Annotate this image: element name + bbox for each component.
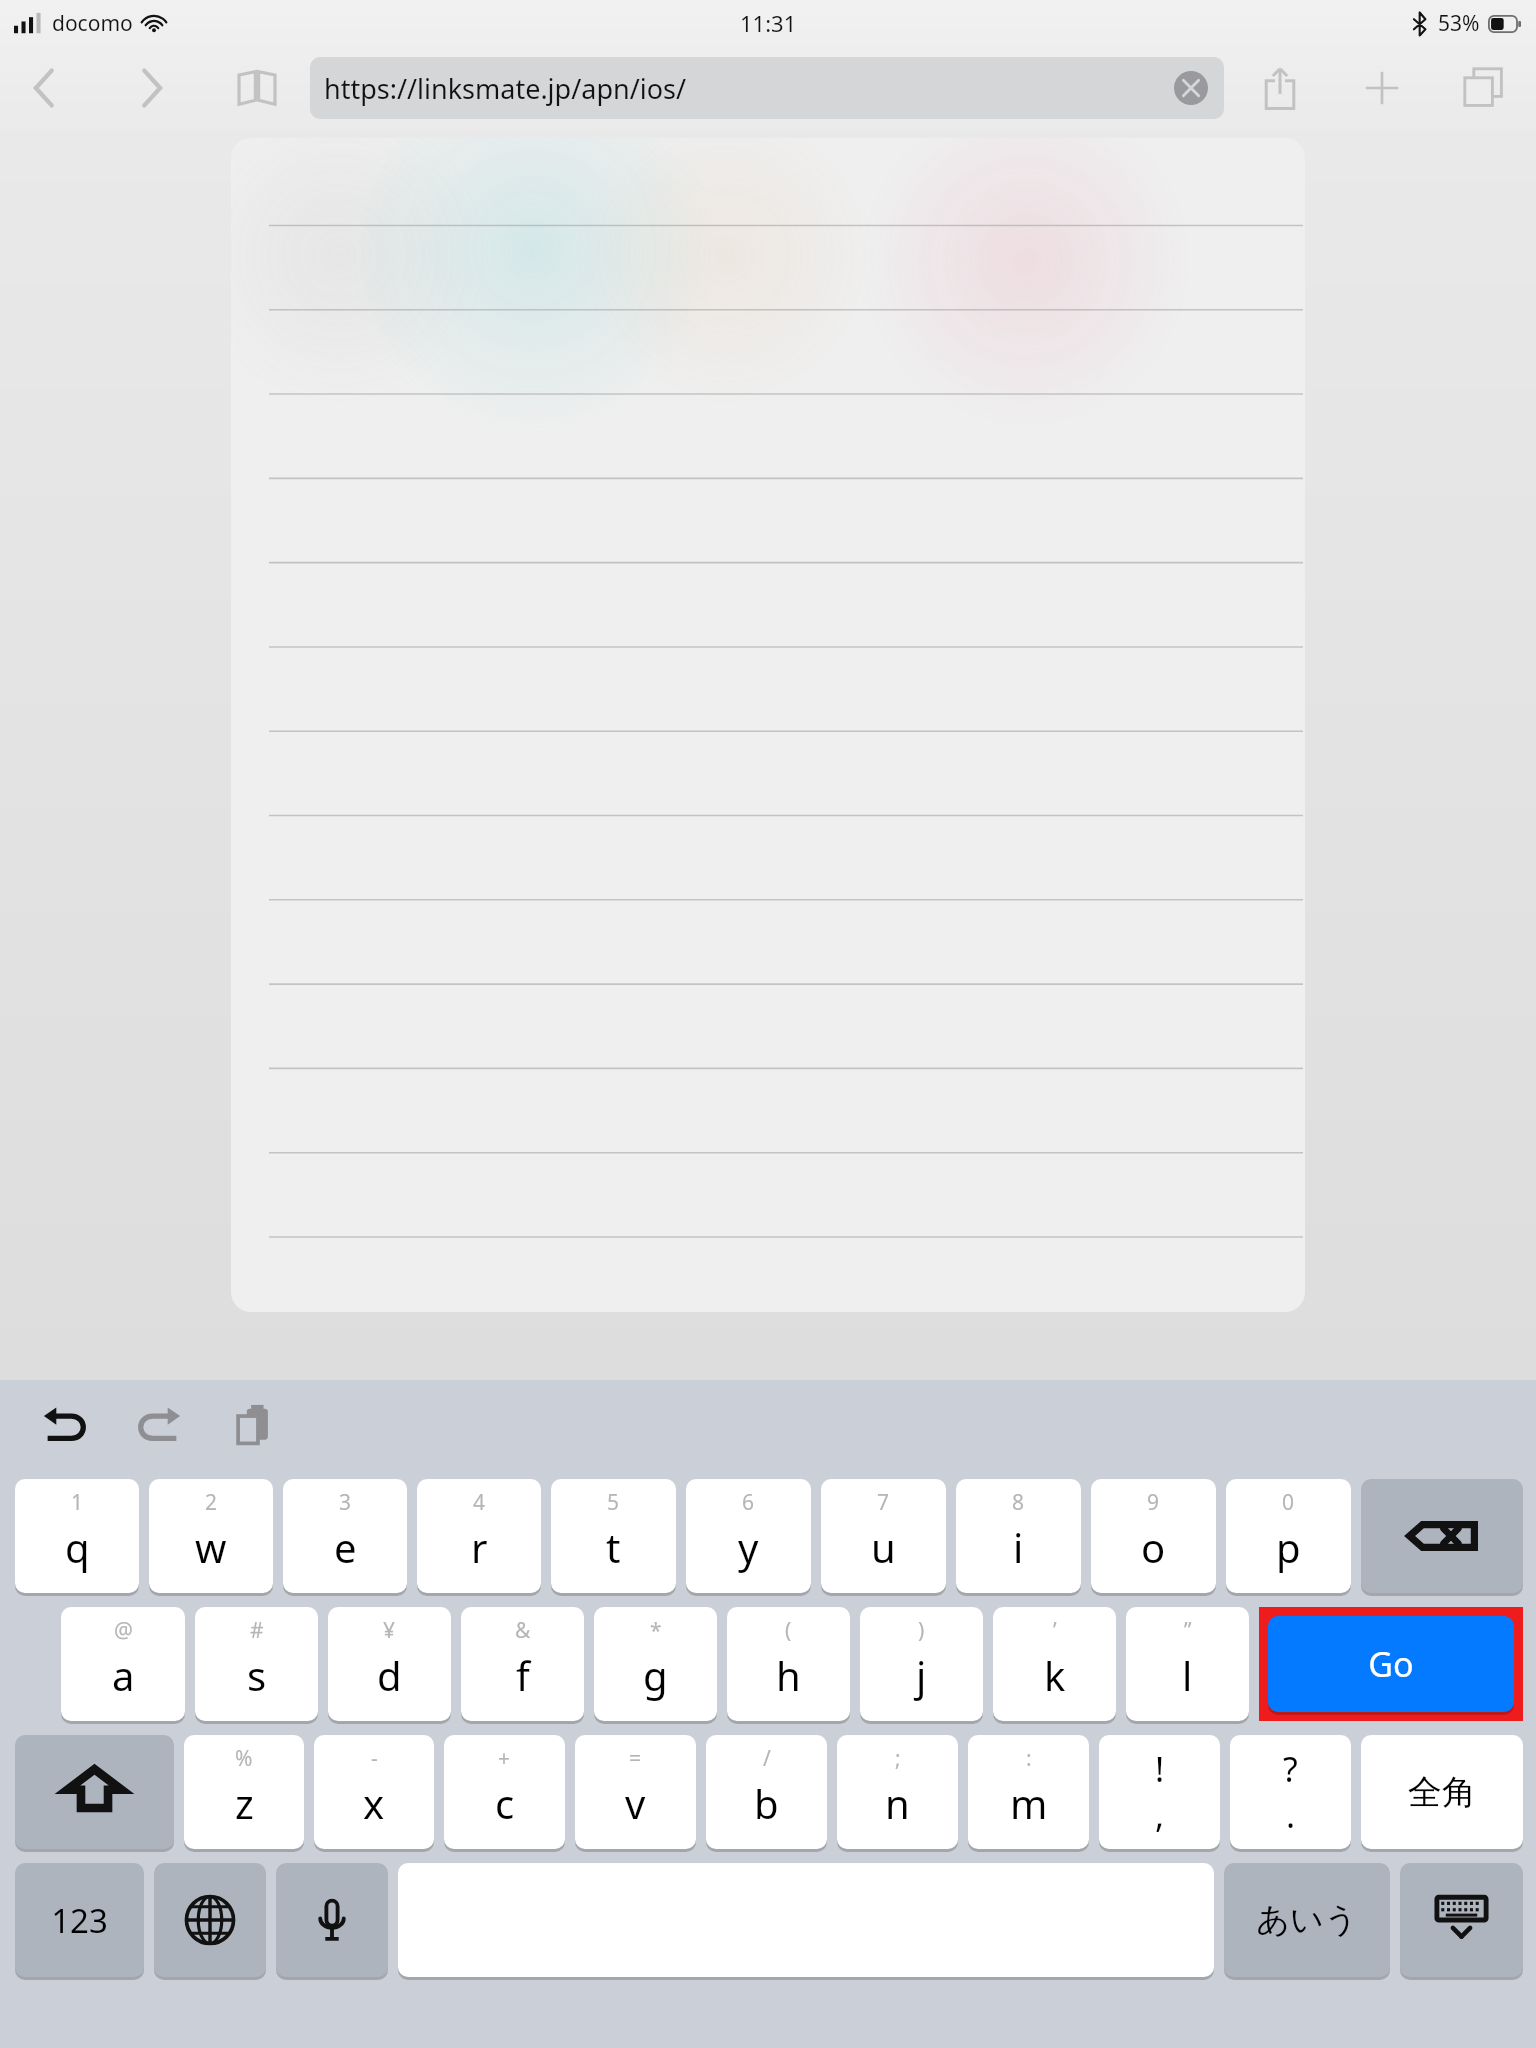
button[interactable]: Back xyxy=(16,59,74,117)
button[interactable]: - xyxy=(314,1735,434,1849)
staticText: 9 xyxy=(1147,1488,1160,1517)
button[interactable]: = xyxy=(575,1735,696,1849)
button[interactable]: Forward xyxy=(122,59,180,117)
button[interactable]: https://linksmate.jp/apn/ios/ xyxy=(310,57,1224,119)
staticText: w xyxy=(195,1520,227,1574)
button[interactable]: Backspace xyxy=(1361,1479,1523,1593)
button[interactable]: 1 xyxy=(15,1479,139,1593)
button[interactable]: ’ xyxy=(993,1607,1116,1721)
button[interactable]: Bookmarks xyxy=(228,59,286,117)
staticText: ” xyxy=(1184,1616,1192,1645)
staticText: 4 xyxy=(473,1488,486,1517)
staticText: o xyxy=(1141,1520,1166,1574)
button[interactable]: ¥ xyxy=(328,1607,451,1721)
staticText: b xyxy=(754,1776,779,1830)
button[interactable]: + xyxy=(444,1735,565,1849)
staticText: n xyxy=(885,1776,910,1830)
staticText: - xyxy=(371,1744,378,1773)
button[interactable]: 全角 xyxy=(1361,1735,1523,1849)
button[interactable]: ) xyxy=(860,1607,983,1721)
button[interactable]: Hide keyboard xyxy=(1400,1863,1523,1977)
button[interactable]: & xyxy=(461,1607,584,1721)
staticText: 1 xyxy=(71,1488,84,1517)
staticText: y xyxy=(738,1520,759,1574)
button[interactable]: Redo xyxy=(128,1395,190,1457)
staticText: v xyxy=(625,1776,646,1830)
staticText: ; xyxy=(895,1744,901,1773)
staticText: 2 xyxy=(205,1488,218,1517)
staticText: f xyxy=(516,1648,530,1702)
staticText: 123 xyxy=(51,1898,108,1943)
button[interactable]: Show tabs xyxy=(1454,58,1514,118)
staticText: 7 xyxy=(877,1488,890,1517)
staticText: = xyxy=(629,1744,642,1773)
staticText: / xyxy=(763,1744,771,1773)
staticText: & xyxy=(515,1616,531,1645)
staticText: 5 xyxy=(607,1488,620,1517)
staticText: h xyxy=(776,1648,801,1702)
button[interactable]: 5 xyxy=(551,1479,676,1593)
button[interactable]: ” xyxy=(1126,1607,1249,1721)
staticText: @ xyxy=(114,1616,133,1645)
button[interactable]: / xyxy=(706,1735,827,1849)
staticText: ’ xyxy=(1053,1616,1057,1645)
button[interactable]: Dictation xyxy=(276,1863,388,1977)
staticText: + xyxy=(498,1744,511,1773)
button[interactable]: Clear text xyxy=(1174,71,1208,105)
button[interactable]: 9 xyxy=(1091,1479,1216,1593)
staticText: l xyxy=(1182,1648,1193,1702)
staticText: ? xyxy=(1283,1746,1298,1792)
staticText: i xyxy=(1013,1520,1024,1574)
button[interactable]: New tab xyxy=(1352,58,1412,118)
button[interactable]: 6 xyxy=(686,1479,811,1593)
staticText: 8 xyxy=(1012,1488,1025,1517)
button[interactable]: 7 xyxy=(821,1479,946,1593)
button[interactable]: ! xyxy=(1099,1735,1220,1849)
button[interactable]: 3 xyxy=(283,1479,407,1593)
button[interactable]: : xyxy=(968,1735,1089,1849)
button[interactable]: ; xyxy=(837,1735,958,1849)
staticText: k xyxy=(1044,1648,1066,1702)
staticText: 3 xyxy=(339,1488,352,1517)
staticText: a xyxy=(112,1648,135,1702)
staticText: : xyxy=(1026,1744,1032,1773)
button[interactable]: Go xyxy=(1268,1616,1514,1712)
staticText: ( xyxy=(785,1616,792,1645)
staticText: s xyxy=(247,1648,267,1702)
staticText: ) xyxy=(918,1616,925,1645)
staticText: . xyxy=(1286,1792,1296,1838)
button[interactable]: 0 xyxy=(1226,1479,1351,1593)
button[interactable]: あいう xyxy=(1224,1863,1390,1977)
button[interactable]: 4 xyxy=(417,1479,541,1593)
staticText: g xyxy=(643,1648,668,1702)
button[interactable]: ? xyxy=(1230,1735,1351,1849)
button[interactable]: # xyxy=(195,1607,318,1721)
staticText: 全角 xyxy=(1408,1771,1476,1814)
staticText: c xyxy=(495,1776,515,1830)
button[interactable]: Change keyboard xyxy=(154,1863,266,1977)
button[interactable]: ( xyxy=(727,1607,850,1721)
button[interactable]: @ xyxy=(61,1607,185,1721)
staticText: % xyxy=(235,1744,253,1773)
button[interactable]: Undo xyxy=(34,1395,96,1457)
staticText: ! xyxy=(1155,1746,1165,1792)
staticText: https://linksmate.jp/apn/ios/ xyxy=(324,70,686,107)
button[interactable]: Paste xyxy=(222,1395,284,1457)
button[interactable]: Shift xyxy=(15,1735,174,1849)
staticText: t xyxy=(606,1520,621,1574)
button[interactable]: 8 xyxy=(956,1479,1081,1593)
staticText: p xyxy=(1276,1520,1301,1574)
staticText: e xyxy=(334,1520,357,1574)
button[interactable]: 2 xyxy=(149,1479,273,1593)
staticText: 6 xyxy=(742,1488,755,1517)
button[interactable]: 123 xyxy=(15,1863,144,1977)
staticText: , xyxy=(1155,1792,1165,1838)
staticText: z xyxy=(235,1776,254,1830)
button[interactable]: % xyxy=(184,1735,304,1849)
staticText: x xyxy=(363,1776,385,1830)
staticText: m xyxy=(1010,1776,1048,1830)
staticText: 53% xyxy=(1438,9,1480,38)
button[interactable]: Share xyxy=(1250,58,1310,118)
button[interactable]: * xyxy=(594,1607,717,1721)
